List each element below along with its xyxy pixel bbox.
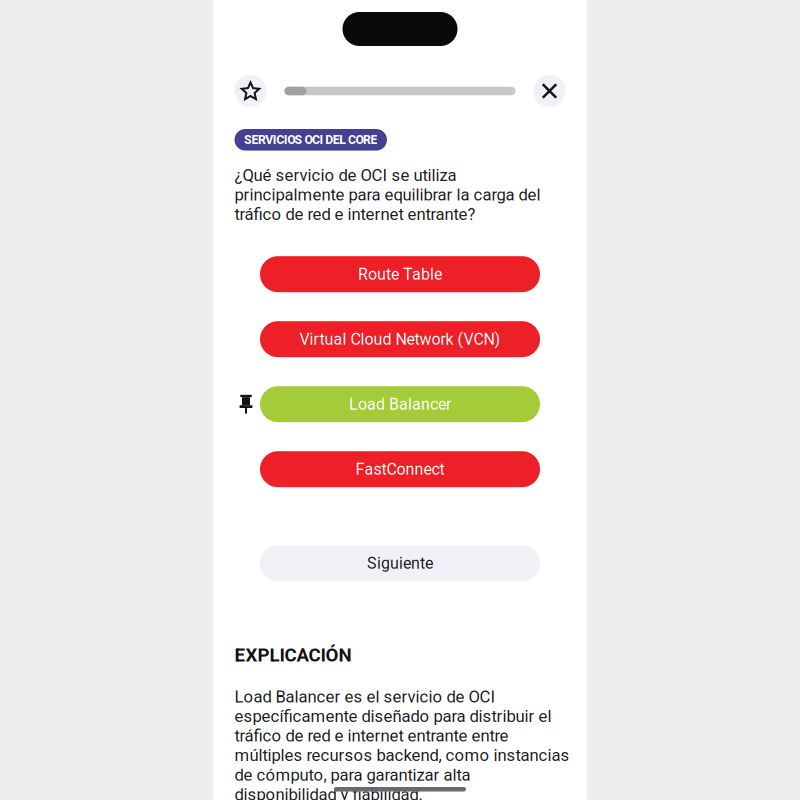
button[interactable]: Close (533, 75, 565, 107)
staticText: Virtual Cloud Network (VCN) (299, 330, 500, 349)
button[interactable]: Load Balancer (260, 386, 540, 422)
staticText: SERVICIOS OCI DEL CORE (244, 133, 377, 147)
staticText: EXPLICACIÓN (234, 644, 351, 666)
button[interactable]: Siguiente (260, 545, 540, 581)
button[interactable]: Route Table (260, 256, 540, 292)
staticText: ¿Qué servicio de OCI se utiliza principa… (234, 166, 540, 224)
staticText: Siguiente (367, 554, 433, 573)
button[interactable]: FastConnect (260, 451, 540, 487)
staticText: FastConnect (355, 460, 444, 479)
button[interactable]: Virtual Cloud Network (VCN) (260, 321, 540, 357)
button[interactable]: Favorite (234, 75, 266, 107)
staticText: Load Balancer es el servicio de OCI espe… (234, 687, 569, 800)
staticText: Route Table (358, 265, 442, 284)
staticText: Load Balancer (349, 395, 451, 414)
